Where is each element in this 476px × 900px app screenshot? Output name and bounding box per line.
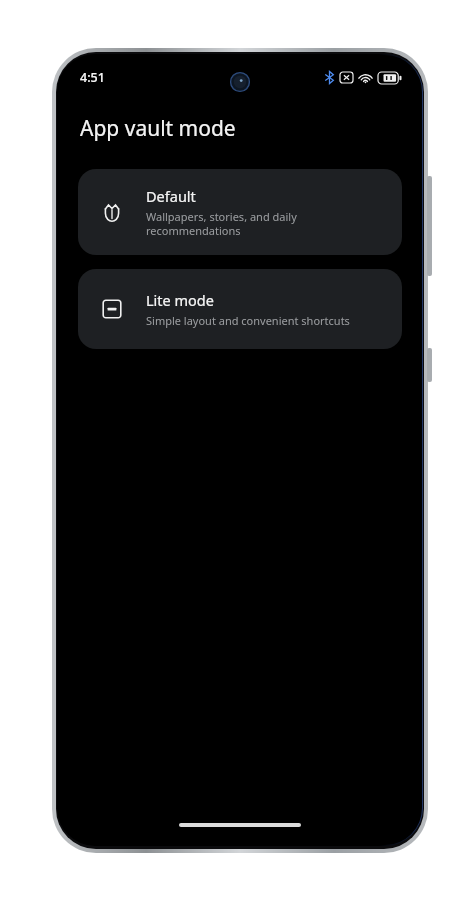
staticText: Wallpapers, stories, and daily recommend… xyxy=(146,209,297,238)
staticText: Default xyxy=(146,186,196,206)
button[interactable]: Default xyxy=(78,169,402,255)
staticText: Simple layout and convenient shortcuts xyxy=(146,313,350,328)
button[interactable]: Lite mode xyxy=(78,269,402,349)
staticText: 4:51 xyxy=(80,69,105,86)
staticText: App vault mode xyxy=(80,114,236,143)
staticText: Lite mode xyxy=(146,290,214,310)
